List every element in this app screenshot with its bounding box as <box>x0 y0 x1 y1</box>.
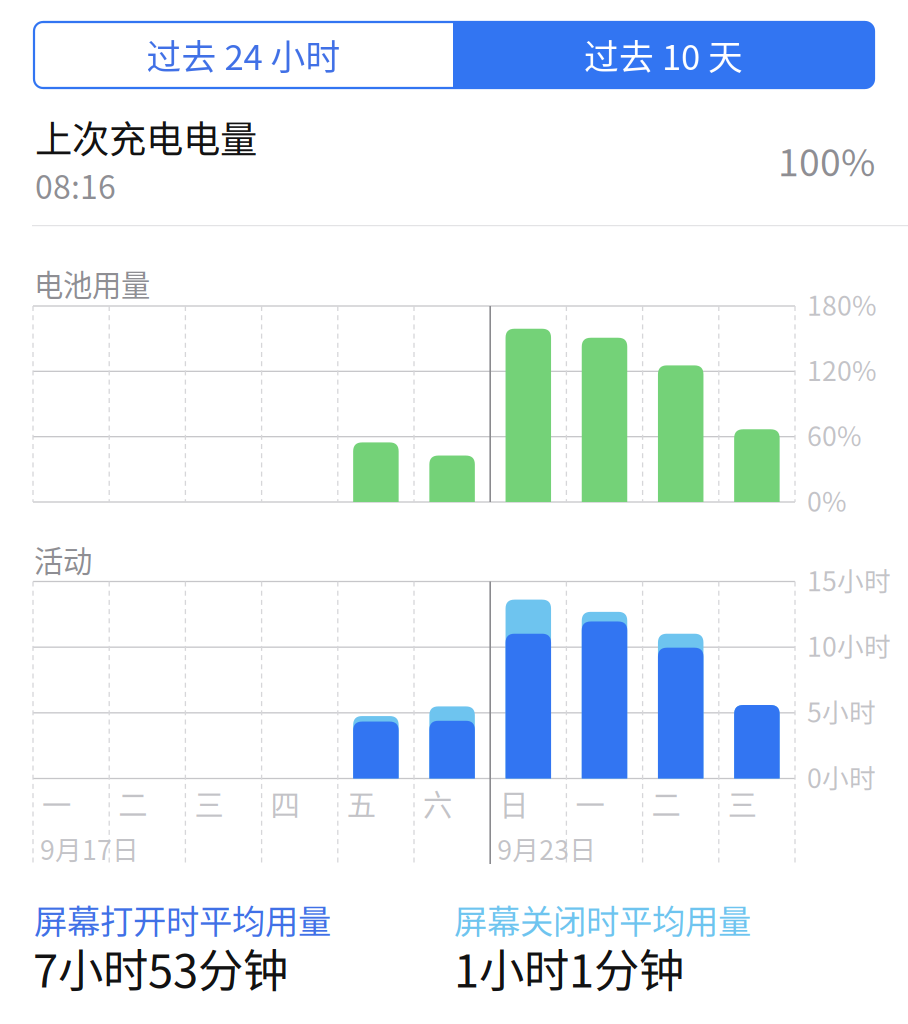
staticText: 9月17日 <box>40 829 139 868</box>
staticText: 三 <box>728 782 757 824</box>
staticText: 过去 10 天 <box>584 30 743 80</box>
staticText: 0小时 <box>807 757 876 796</box>
staticText: 四 <box>271 782 300 824</box>
button[interactable]: 过去 24 小时 <box>34 22 453 88</box>
staticText: 电池用量 <box>34 262 150 304</box>
staticText: 二 <box>118 782 147 824</box>
staticText: 一 <box>575 782 604 824</box>
staticText: 60% <box>807 415 862 454</box>
staticText: 二 <box>652 782 681 824</box>
staticText: 屏幕打开时平均用量 <box>34 895 331 943</box>
staticText: 120% <box>807 350 877 389</box>
staticText: 六 <box>423 782 452 824</box>
staticText: 0% <box>807 481 847 519</box>
staticText: 一 <box>42 782 71 824</box>
staticText: 15小时 <box>807 560 891 599</box>
button[interactable]: 过去 10 天 <box>453 22 874 88</box>
staticText: 7小时53分钟 <box>33 935 288 1001</box>
staticText: 08:16 <box>35 162 116 208</box>
staticText: 过去 24 小时 <box>146 30 340 80</box>
staticText: 上次充电电量 <box>35 110 257 164</box>
staticText: 5小时 <box>807 691 876 730</box>
staticText: 活动 <box>34 538 92 580</box>
staticText: 180% <box>807 285 877 323</box>
staticText: 1小时1分钟 <box>454 935 684 1001</box>
staticText: 日 <box>499 782 528 824</box>
staticText: 9月23日 <box>497 829 596 868</box>
staticText: 100% <box>778 133 875 187</box>
staticText: 五 <box>347 782 376 824</box>
staticText: 10小时 <box>807 626 891 664</box>
staticText: 屏幕关闭时平均用量 <box>454 895 751 943</box>
staticText: 三 <box>194 782 223 824</box>
